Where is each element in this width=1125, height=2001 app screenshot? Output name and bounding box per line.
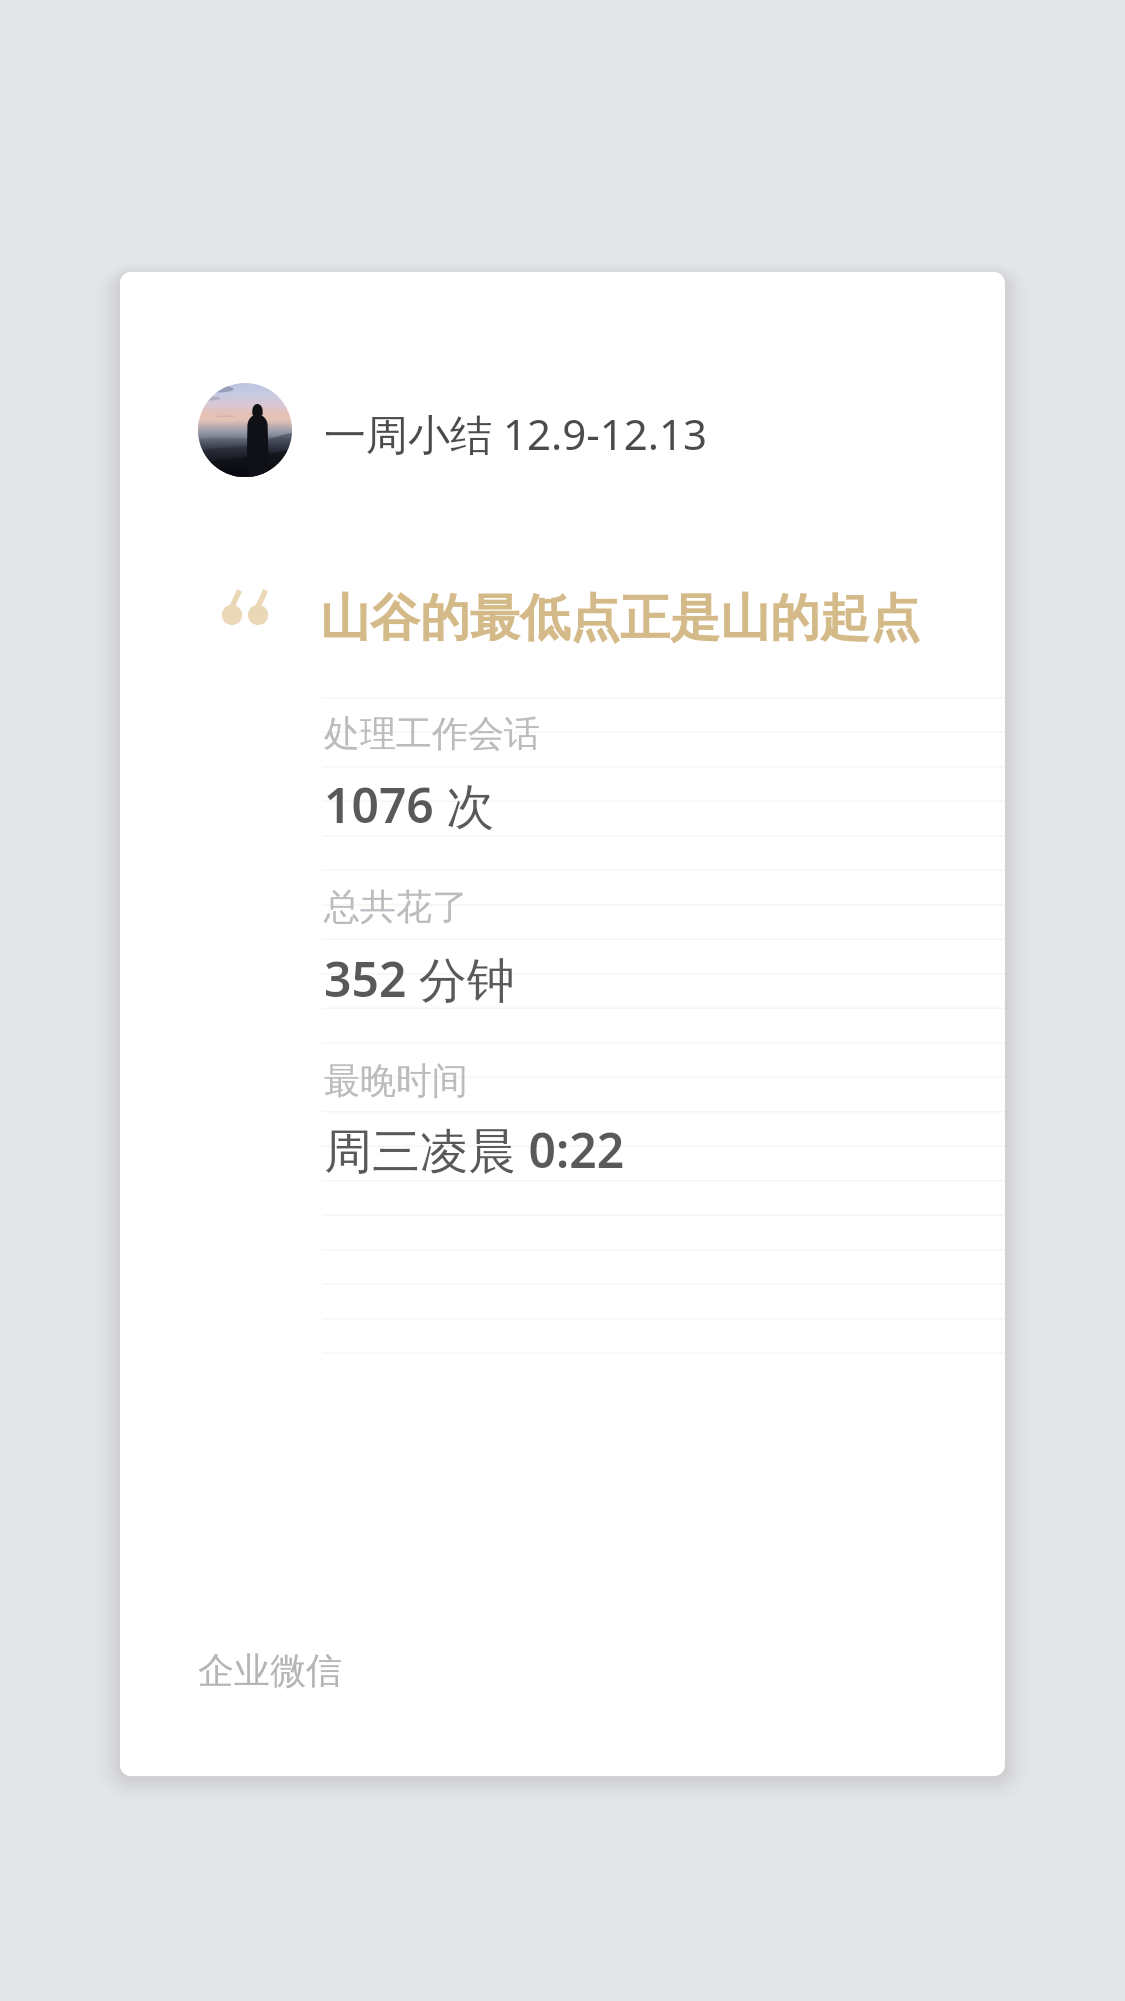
button[interactable]	[322, 1042, 1005, 1194]
button[interactable]	[322, 694, 1005, 846]
staticText: 处理工作会话	[324, 711, 540, 756]
staticText: 山谷的最低点正是山的起点	[320, 587, 920, 650]
staticText: 1076 次	[324, 772, 495, 838]
button[interactable]	[322, 868, 1005, 1020]
staticText: 最晚时间	[324, 1058, 468, 1103]
other: Quote	[221, 588, 277, 628]
staticText: 周三凌晨 0:22	[324, 1117, 625, 1183]
staticText: 352 分钟	[324, 946, 515, 1012]
staticText: 企业微信	[198, 1648, 342, 1693]
button[interactable]: Profile avatar	[120, 272, 1005, 1776]
button[interactable]: Profile avatar	[198, 383, 292, 477]
staticText: 一周小结 12.9-12.13	[324, 405, 708, 462]
staticText: 总共花了	[324, 884, 468, 929]
